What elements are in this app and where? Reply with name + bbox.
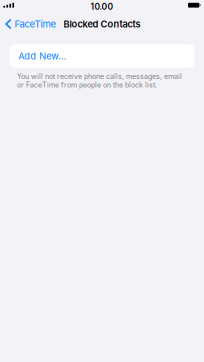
staticText: Blocked Contacts [63, 18, 140, 30]
button[interactable]: Add New… [10, 44, 194, 68]
staticText: You will not receive phone calls, messag… [17, 72, 182, 89]
button[interactable]: FaceTime [0, 14, 59, 34]
staticText: FaceTime [14, 18, 56, 30]
staticText: 10.00 [90, 2, 113, 12]
staticText: Add New… [18, 50, 66, 62]
